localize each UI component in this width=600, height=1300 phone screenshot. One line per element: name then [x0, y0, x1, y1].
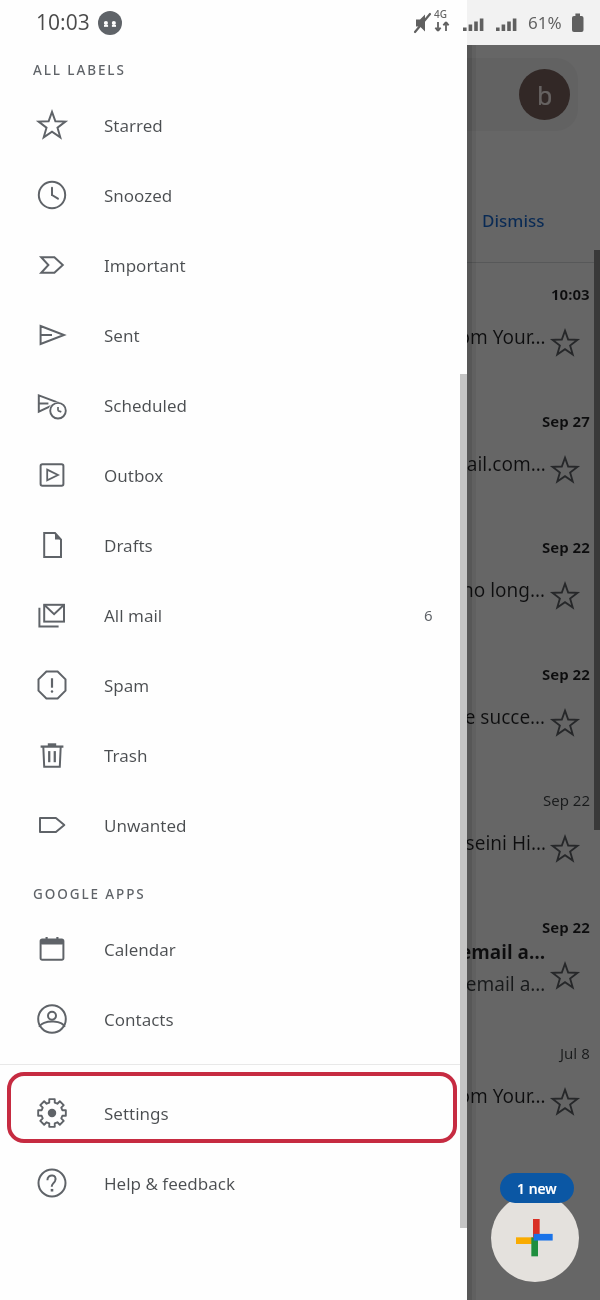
staticText: Snoozed [104, 184, 173, 207]
staticText: Sep 22 [542, 664, 590, 684]
button[interactable]: Star [548, 832, 582, 866]
button[interactable]: Help & feedback [0, 1148, 467, 1218]
button[interactable]: Star [548, 1085, 582, 1119]
staticText: Jul 8 [560, 1043, 590, 1063]
staticText: Sep 22 [543, 790, 590, 810]
staticText: Scheduled [104, 394, 187, 417]
button[interactable]: Trash [0, 720, 467, 790]
staticText: rom Your… [451, 324, 546, 350]
button[interactable]: All mail [0, 580, 467, 650]
button[interactable]: Scheduled [0, 370, 467, 440]
button[interactable]: Contacts [0, 984, 467, 1054]
staticText: Sep 22 [542, 917, 590, 937]
staticText: Calendar [104, 938, 176, 961]
button[interactable]: Sent [0, 300, 467, 370]
staticText: Starred [104, 114, 163, 137]
staticText: Trash [104, 744, 148, 767]
staticText: All mail [104, 604, 163, 627]
staticText: rom Your… [451, 1083, 546, 1109]
staticText: 10:03 [551, 284, 590, 304]
button[interactable]: Settings [0, 1078, 467, 1148]
staticText: r email a… [453, 971, 546, 997]
button[interactable] [466, 769, 600, 894]
button[interactable]: Unwanted [0, 790, 467, 860]
staticText: Outbox [104, 464, 164, 487]
staticText: osseini Hi… [445, 830, 546, 856]
button[interactable] [466, 390, 600, 515]
staticText: Dismiss [482, 209, 545, 232]
button[interactable]: Drafts [0, 510, 467, 580]
staticText: Help & feedback [104, 1172, 236, 1195]
staticText: 61% [528, 11, 562, 34]
button[interactable] [466, 263, 600, 388]
staticText: Unwanted [104, 814, 187, 837]
button[interactable]: Starred [0, 90, 467, 160]
staticText: 6 [424, 605, 433, 625]
button[interactable]: Star [548, 453, 582, 487]
staticText: Drafts [104, 534, 153, 557]
staticText: Sent [104, 324, 140, 347]
button[interactable]: Snoozed [0, 160, 467, 230]
button[interactable] [466, 516, 600, 641]
staticText: Settings [104, 1102, 169, 1125]
staticText: ve succe… [455, 704, 546, 730]
button[interactable]: Calendar [0, 914, 467, 984]
button[interactable] [466, 1022, 600, 1147]
staticText: s no long… [448, 577, 546, 603]
button[interactable] [466, 896, 600, 1021]
button[interactable]: Star [548, 326, 582, 360]
staticText: Sep 27 [542, 411, 590, 431]
button[interactable]: 1 new [500, 1173, 574, 1203]
staticText: Contacts [104, 1008, 174, 1031]
button[interactable]: Outbox [0, 440, 467, 510]
button[interactable]: Important [0, 230, 467, 300]
staticText: Spam [104, 674, 150, 697]
button[interactable]: Star [548, 579, 582, 613]
staticText: 10:03 [36, 8, 90, 37]
staticText: ALL LABELS [33, 61, 126, 79]
staticText: 1 new [517, 1179, 557, 1198]
button[interactable]: Spam [0, 650, 467, 720]
button[interactable]: Compose [491, 1194, 579, 1282]
staticText: b [537, 78, 553, 112]
button[interactable]: Star [548, 959, 582, 993]
staticText: 4G [434, 7, 447, 21]
button[interactable]: b [300, 58, 578, 131]
staticText: mail.com… [449, 451, 546, 477]
staticText: Important [104, 254, 186, 277]
button[interactable]: Star [548, 706, 582, 740]
staticText: Sep 22 [542, 537, 590, 557]
button[interactable]: Dismiss [468, 198, 559, 242]
button[interactable] [466, 643, 600, 768]
staticText: GOOGLE APPS [33, 885, 146, 903]
staticText: email a… [460, 939, 546, 965]
